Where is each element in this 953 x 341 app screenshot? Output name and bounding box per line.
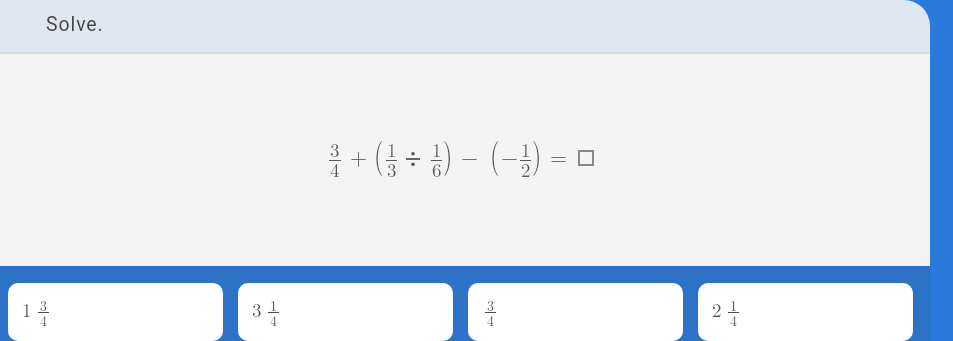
staticText: ( <box>374 127 384 177</box>
staticText: 2 <box>712 296 722 310</box>
staticText: 3 <box>387 156 397 170</box>
staticText: 1 <box>270 295 277 306</box>
staticText: 3 <box>252 296 262 310</box>
button[interactable]: 3 <box>468 283 683 341</box>
staticText: 1 <box>521 136 531 150</box>
staticText: Solve. <box>46 13 104 36</box>
staticText: 3 <box>330 136 340 150</box>
staticText: ) <box>532 127 542 177</box>
staticText: 4 <box>730 310 737 321</box>
staticText: 4 <box>40 310 47 321</box>
staticText: + <box>350 140 368 162</box>
staticText: 4 <box>270 310 277 321</box>
staticText: 4 <box>487 310 494 321</box>
staticText: 1 <box>432 136 442 150</box>
staticText: 4 <box>330 156 340 170</box>
staticText: 3 <box>40 295 47 306</box>
staticText: = <box>550 140 568 162</box>
button[interactable]: 3 <box>238 283 453 341</box>
button[interactable] <box>578 150 594 166</box>
staticText: 1 <box>730 295 737 306</box>
staticText: ) <box>443 127 453 177</box>
staticText: ( <box>490 127 500 177</box>
staticText: 1 <box>387 136 397 150</box>
staticText: 6 <box>432 156 442 170</box>
button[interactable]: 1 <box>8 283 223 341</box>
staticText: 1 <box>22 296 32 310</box>
staticText: 2 <box>521 156 531 170</box>
staticText: − <box>461 140 479 162</box>
staticText: 3 <box>487 295 494 306</box>
button[interactable]: 2 <box>698 283 913 341</box>
staticText: − <box>501 140 519 162</box>
